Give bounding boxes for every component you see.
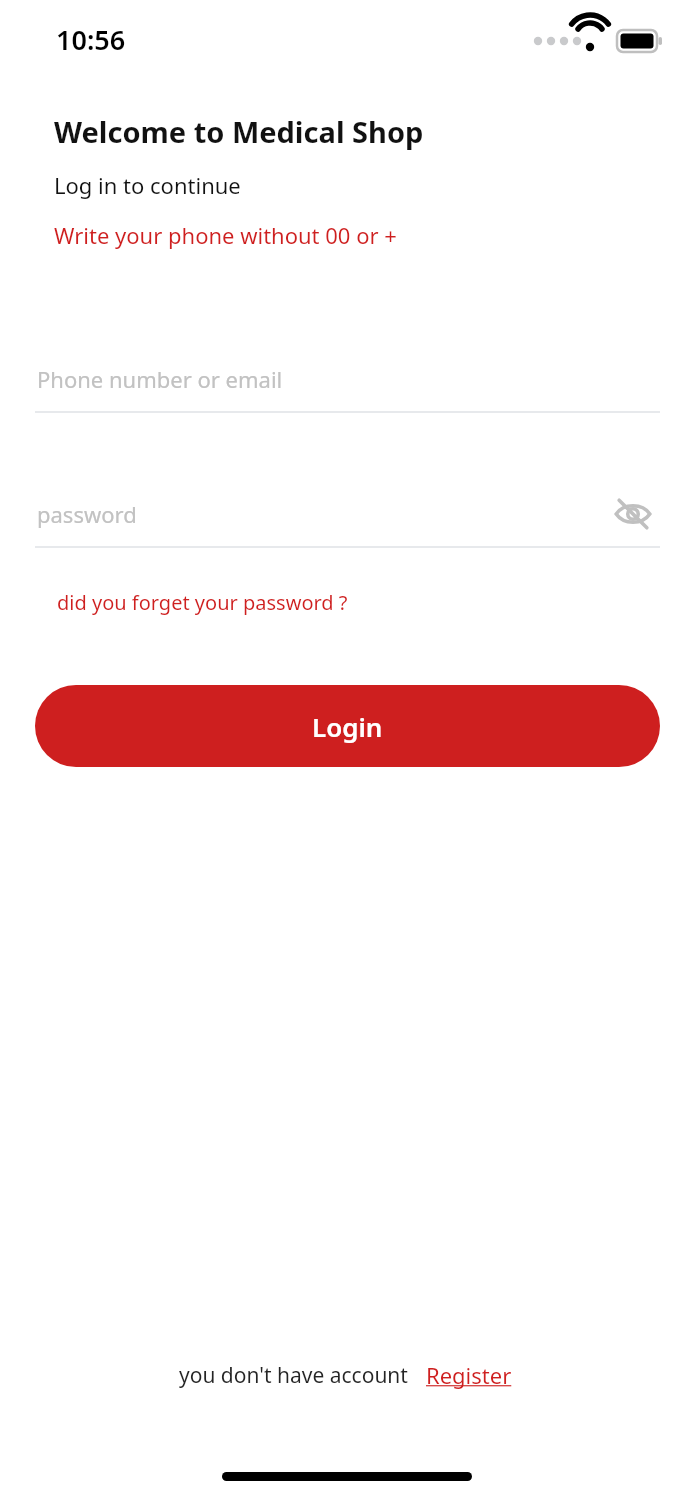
- button[interactable]: Show password: [606, 487, 660, 541]
- staticText: did you forget your password ?: [57, 589, 348, 616]
- staticText: Write your phone without 00 or +: [54, 220, 397, 250]
- staticText: Login: [312, 709, 383, 744]
- staticText: Welcome to Medical Shop: [54, 112, 424, 151]
- staticText: 10:56: [56, 21, 126, 58]
- staticText: Register: [426, 1360, 512, 1390]
- button[interactable]: Register: [424, 1358, 514, 1392]
- button[interactable]: did you forget your password ?: [50, 585, 355, 620]
- button[interactable]: Phone number or email: [35, 345, 660, 413]
- staticText: Log in to continue: [54, 170, 241, 200]
- button[interactable]: password: [35, 480, 660, 548]
- button[interactable]: Login: [35, 685, 660, 767]
- staticText: password: [37, 499, 137, 529]
- staticText: you don't have account: [179, 1361, 408, 1390]
- staticText: Phone number or email: [37, 364, 283, 394]
